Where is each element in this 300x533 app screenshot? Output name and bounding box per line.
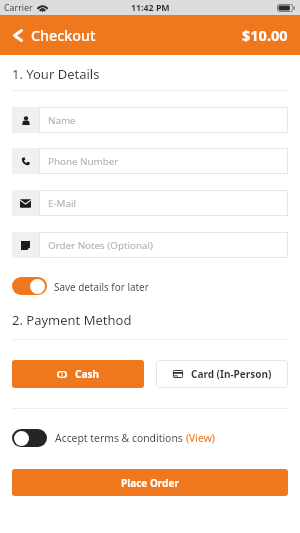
button[interactable]: Phone Number [39,148,288,174]
staticText: $10.00 [242,25,288,45]
staticText: 1. Your Details [12,65,100,83]
staticText: Phone Number [48,155,119,168]
button[interactable]: Order Notes (Optional) [39,232,288,258]
button[interactable]: Back [0,15,35,55]
staticText: Card (In-Person) [191,367,272,381]
staticText: E-Mail [48,197,77,210]
button[interactable]: Place Order [12,469,288,496]
button[interactable]: Save details toggle [12,277,47,295]
button[interactable]: E-Mail [39,190,288,216]
staticText: 2. Payment Method [12,311,132,329]
staticText: 11:42 PM [131,2,170,14]
button[interactable]: Name [39,107,288,133]
staticText: Order Notes (Optional) [48,239,153,252]
staticText: Accept terms & conditions [55,431,186,445]
staticText: Cash [75,367,99,381]
button[interactable]: Card (In-Person) [156,360,288,388]
staticText: Name [48,114,76,127]
staticText: Checkout [31,26,96,45]
button[interactable]: Cash [12,360,144,388]
staticText: Carrier [4,2,33,14]
staticText: Save details for later [54,280,149,293]
staticText: (View) [186,431,215,445]
button[interactable]: Accept terms toggle [12,429,47,447]
staticText: Place Order [121,476,179,490]
